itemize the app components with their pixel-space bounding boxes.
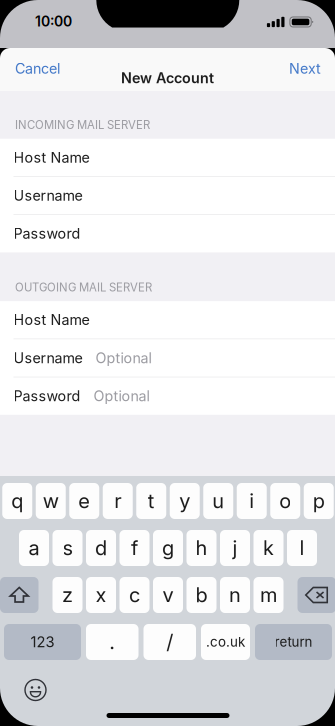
staticText: m (260, 583, 277, 607)
button[interactable]: l (287, 530, 317, 566)
button[interactable]: o (270, 483, 300, 519)
staticText: a (28, 536, 39, 560)
staticText: . (109, 630, 115, 654)
button[interactable]: w (36, 483, 66, 519)
staticText: l (299, 536, 304, 560)
button[interactable]: k (253, 530, 283, 566)
button[interactable]: Emoji (18, 676, 52, 704)
staticText: return (274, 634, 312, 650)
button[interactable]: return (255, 624, 332, 660)
staticText: o (279, 489, 291, 513)
button[interactable]: s (52, 530, 82, 566)
button[interactable]: Host Name (0, 301, 335, 339)
button[interactable]: Cancel (0, 48, 70, 80)
staticText: Optional (95, 349, 151, 367)
staticText: z (62, 583, 73, 607)
staticText: u (212, 489, 224, 513)
staticText: r (114, 489, 121, 513)
staticText: h (195, 536, 207, 560)
button[interactable]: Host Name (0, 139, 335, 176)
button[interactable]: Username (0, 339, 335, 377)
button[interactable]: c (119, 577, 149, 613)
staticText: v (162, 583, 173, 607)
button[interactable]: d (86, 530, 116, 566)
button[interactable]: z (52, 577, 82, 613)
staticText: Host Name (13, 311, 89, 328)
button[interactable]: / (143, 624, 196, 660)
staticText: x (95, 583, 106, 607)
button[interactable]: 123 (4, 624, 81, 660)
button[interactable]: m (253, 577, 283, 613)
staticText: k (263, 536, 274, 560)
staticText: t (148, 489, 155, 513)
staticText: Password (13, 387, 80, 405)
staticText: q (11, 489, 23, 513)
staticText: 123 (30, 633, 54, 651)
staticText: .co.uk (206, 634, 245, 650)
button[interactable]: Username (0, 177, 335, 214)
staticText: w (43, 489, 59, 513)
staticText: / (166, 630, 173, 654)
staticText: 10:00 (35, 13, 72, 30)
button[interactable]: e (69, 483, 99, 519)
staticText: Optional (93, 387, 149, 405)
staticText: b (195, 583, 207, 607)
button[interactable]: .co.uk (201, 624, 250, 660)
staticText: Username (13, 349, 82, 367)
staticText: j (232, 536, 237, 560)
button[interactable]: b (186, 577, 216, 613)
staticText: Cancel (15, 60, 60, 77)
button[interactable]: Password (0, 215, 335, 252)
staticText: g (162, 536, 174, 560)
staticText: Username (13, 187, 82, 204)
staticText: e (78, 489, 90, 513)
staticText: Host Name (13, 149, 89, 166)
staticText: d (95, 536, 107, 560)
staticText: OUTGOING MAIL SERVER (15, 280, 152, 294)
button[interactable]: p (304, 483, 334, 519)
button[interactable]: Delete (297, 577, 335, 613)
button[interactable]: t (136, 483, 166, 519)
button[interactable]: v (153, 577, 183, 613)
staticText: c (129, 583, 140, 607)
button[interactable]: i (237, 483, 267, 519)
staticText: p (313, 489, 325, 513)
staticText: INCOMING MAIL SERVER (15, 118, 150, 132)
staticText: Password (13, 225, 80, 242)
button[interactable]: u (203, 483, 233, 519)
button[interactable]: n (220, 577, 250, 613)
staticText: s (62, 536, 72, 560)
staticText: f (131, 536, 138, 560)
button[interactable]: g (153, 530, 183, 566)
staticText: n (229, 583, 241, 607)
button[interactable]: x (86, 577, 116, 613)
button[interactable]: r (103, 483, 133, 519)
button[interactable]: . (86, 624, 138, 660)
button[interactable]: y (170, 483, 200, 519)
button[interactable]: f (119, 530, 149, 566)
button[interactable]: Shift (0, 577, 38, 613)
button[interactable]: Password (0, 377, 335, 415)
button[interactable]: j (220, 530, 250, 566)
staticText: i (249, 489, 254, 513)
button[interactable]: h (186, 530, 216, 566)
staticText: Next (289, 60, 321, 77)
staticText: New Account (121, 69, 214, 87)
button[interactable]: q (2, 483, 32, 519)
button[interactable]: a (19, 530, 49, 566)
staticText: y (179, 489, 190, 513)
button[interactable]: Next (279, 48, 335, 80)
